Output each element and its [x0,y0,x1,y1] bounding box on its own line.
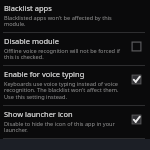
staticText: Blacklist apps [4,3,52,13]
staticText: Disable module [4,36,59,46]
button[interactable]: Enable for voice typing [0,66,150,105]
button[interactable]: Disable module [129,39,143,53]
button[interactable]: Show launcher icon [0,106,150,138]
button[interactable]: Show launcher icon [129,112,143,126]
staticText: Keyboards use voice typing instead of vo… [4,80,127,101]
staticText: Enable for voice typing [4,69,85,79]
staticText: Show launcher icon [4,109,73,119]
button[interactable]: Blacklist apps [0,0,150,32]
staticText: Disable to hide the icon of this app in … [4,120,127,134]
button[interactable]: Enable for voice typing [129,72,143,86]
button[interactable]: Disable module [0,33,150,65]
staticText: Blacklisted apps won't be affected by th… [4,14,127,28]
staticText: Offline voice recognition will not be fo… [4,47,127,61]
